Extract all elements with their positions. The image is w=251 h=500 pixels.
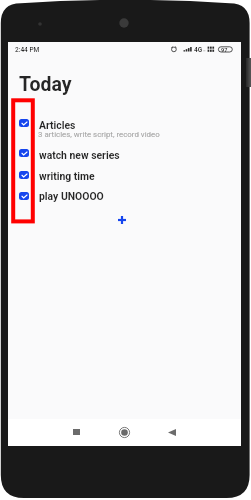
staticText: play UNOOOO (39, 190, 104, 202)
button[interactable]: play UNOOOO (8, 186, 241, 206)
button[interactable]: Add task (112, 210, 132, 230)
staticText: Today (19, 73, 72, 96)
button[interactable]: Articles (8, 113, 241, 135)
button[interactable]: watch new series (8, 143, 241, 163)
button[interactable]: writing time (8, 165, 241, 185)
button[interactable]: Back (162, 422, 182, 442)
staticText: 4G (194, 46, 203, 54)
staticText: 2:44 PM (15, 46, 40, 54)
staticText: 3 articles, write script, record video (38, 130, 160, 139)
staticText: watch new series (39, 149, 120, 161)
staticText: Articles (39, 119, 76, 131)
staticText: 97 (221, 47, 228, 53)
staticText: writing time (39, 170, 95, 182)
button[interactable]: Home (114, 422, 134, 442)
button[interactable]: Recent apps (66, 422, 86, 442)
